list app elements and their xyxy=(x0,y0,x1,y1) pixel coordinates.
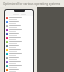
button[interactable] xyxy=(5,68,33,72)
button[interactable]: Optimized for various operating systems xyxy=(0,0,64,7)
button[interactable] xyxy=(5,56,33,60)
button[interactable] xyxy=(5,32,33,36)
button[interactable] xyxy=(5,36,33,40)
button[interactable] xyxy=(5,28,33,32)
button[interactable] xyxy=(5,24,33,28)
button[interactable] xyxy=(5,52,33,56)
button[interactable] xyxy=(5,48,33,52)
staticText: Optimized for various operating systems xyxy=(3,2,61,6)
button[interactable] xyxy=(5,16,33,20)
button[interactable] xyxy=(5,60,33,64)
button[interactable] xyxy=(5,40,33,44)
button[interactable] xyxy=(5,64,33,68)
button[interactable] xyxy=(5,44,33,48)
button[interactable] xyxy=(5,20,33,24)
